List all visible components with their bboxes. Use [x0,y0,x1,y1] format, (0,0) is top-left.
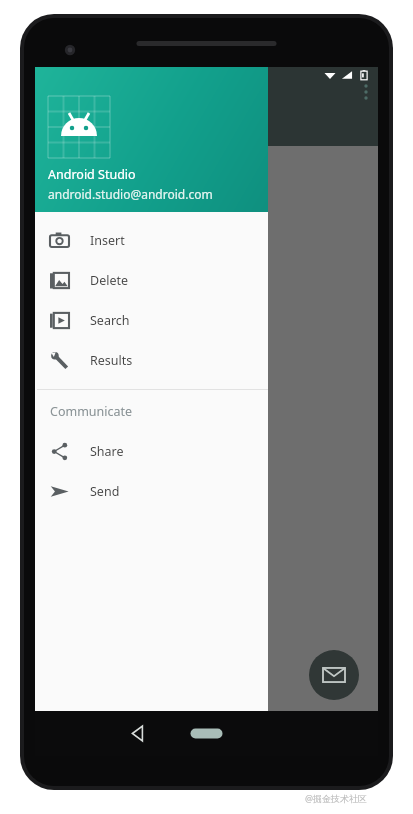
button[interactable]: Insert [35,220,268,260]
staticText: Insert [90,232,125,249]
staticText: Send [90,483,120,500]
staticText: Communicate [50,403,133,420]
staticText: Results [90,352,133,369]
staticText: android.studio@android.com [48,186,213,202]
button[interactable]: Share [35,431,268,471]
button[interactable]: Compose email [309,650,359,700]
button[interactable]: Results [35,340,268,380]
staticText: Android Studio [48,166,136,183]
button[interactable]: Search [35,300,268,340]
button[interactable]: More options [353,79,379,105]
button[interactable]: Send [35,471,268,511]
button[interactable]: Delete [35,260,268,300]
staticText: Delete [90,272,129,289]
staticText: @掘金技术社区 [305,792,368,804]
staticText: Search [90,312,130,329]
staticText: Share [90,443,124,460]
